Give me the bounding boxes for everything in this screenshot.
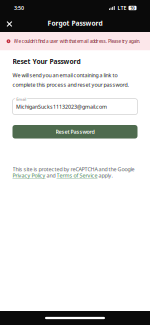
staticText: LTE: [117, 4, 126, 12]
button[interactable]: Close: [0, 16, 19, 32]
button[interactable]: Terms of Service: [56, 172, 97, 179]
staticText: and: [45, 172, 56, 179]
staticText: We couldn't find a user with that email …: [14, 39, 124, 44]
staticText: MichiganSucks11132023@gmail.com: [16, 103, 107, 110]
staticText: Terms of Service: [56, 172, 97, 179]
staticText: Reset Password: [55, 128, 94, 135]
staticText: 3:50: [14, 4, 24, 12]
staticText: Privacy Policy: [12, 172, 45, 179]
staticText: apply.: [97, 172, 112, 179]
staticText: 93: [130, 5, 134, 11]
staticText: Reset Your Password: [12, 57, 80, 66]
staticText: This site is protected by reCAPTCHA and …: [12, 166, 134, 173]
button[interactable]: Reset Password: [12, 125, 137, 138]
staticText: We will send you an email containing a l…: [12, 72, 128, 88]
button[interactable]: Privacy Policy: [12, 172, 45, 179]
staticText: Email: [16, 97, 26, 102]
staticText: Forgot Password: [47, 19, 102, 28]
